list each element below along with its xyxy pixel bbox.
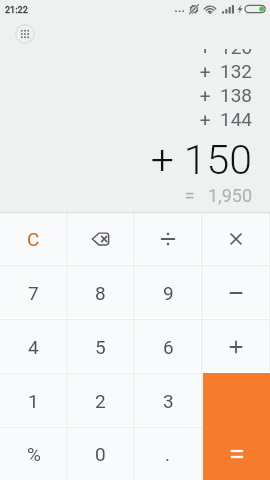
staticText: 21:22 — [5, 5, 28, 16]
button[interactable]: 7 — [0, 266, 67, 320]
button[interactable]: . — [134, 428, 202, 480]
button[interactable]: 8 — [67, 266, 134, 320]
staticText: 3 — [163, 390, 174, 412]
button[interactable]: Divide — [134, 212, 202, 266]
button[interactable]: 9 — [134, 266, 202, 320]
staticText: + 150 — [150, 136, 252, 184]
staticText: . — [165, 443, 171, 465]
staticText: 9 — [163, 282, 174, 304]
button[interactable]: Backspace — [67, 212, 134, 266]
staticText: 4 — [28, 336, 39, 358]
staticText: + 138 — [199, 84, 252, 106]
staticText: = 1,950 — [184, 185, 252, 206]
button[interactable]: 2 — [67, 374, 134, 428]
button[interactable]: Equals — [203, 373, 270, 480]
button[interactable]: 0 — [67, 428, 134, 480]
staticText: + 144 — [199, 108, 252, 130]
staticText: + 126 — [199, 49, 252, 58]
button[interactable]: 6 — [134, 320, 202, 374]
button[interactable]: 4 — [0, 320, 67, 374]
staticText: 0 — [95, 443, 106, 465]
staticText: 7 — [28, 282, 39, 304]
button[interactable]: 1 — [0, 374, 67, 428]
button[interactable]: Scientific mode — [15, 24, 35, 44]
button[interactable]: Multiply — [202, 212, 270, 266]
button[interactable]: % — [0, 428, 67, 480]
staticText: 1 — [28, 390, 39, 412]
button[interactable]: Clear — [0, 212, 67, 266]
button[interactable]: Plus — [202, 320, 270, 374]
button[interactable]: Minus — [202, 266, 270, 320]
button[interactable]: 3 — [134, 374, 202, 428]
staticText: 6 — [163, 336, 174, 358]
staticText: % — [27, 443, 41, 465]
staticText: 5 — [95, 336, 106, 358]
staticText: 2 — [95, 390, 106, 412]
button[interactable]: 5 — [67, 320, 134, 374]
staticText: + 132 — [199, 60, 252, 82]
staticText: C — [27, 228, 40, 250]
staticText: 8 — [95, 282, 106, 304]
